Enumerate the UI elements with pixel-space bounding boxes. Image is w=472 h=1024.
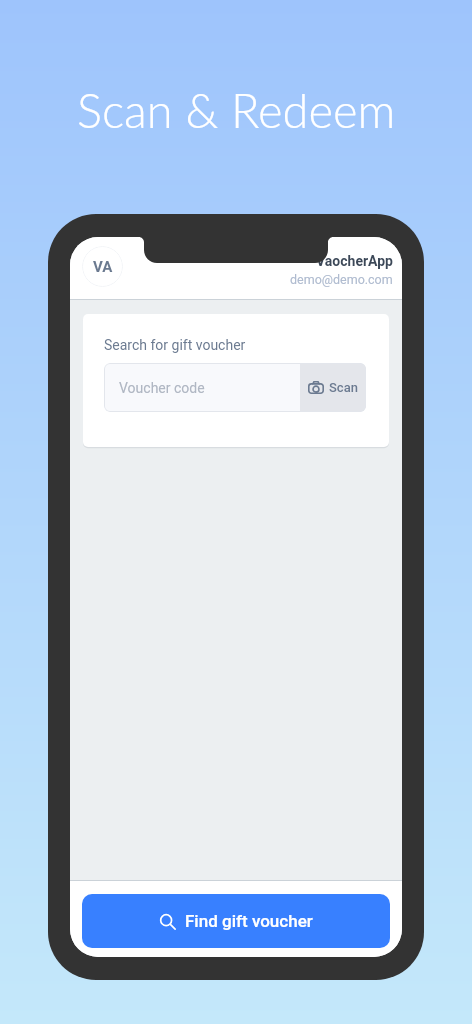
staticText: Search for gift voucher	[104, 337, 246, 353]
button[interactable]: Account	[82, 246, 123, 287]
staticText: VA	[93, 258, 113, 276]
button[interactable]: VaocherApp	[290, 253, 393, 287]
staticText: demo@demo.com	[290, 272, 393, 287]
button[interactable]: Scan	[300, 363, 366, 412]
staticText: Scan	[329, 380, 358, 395]
staticText: Find gift voucher	[185, 911, 313, 931]
staticText: VaocherApp	[316, 253, 393, 269]
staticText: Scan & Redeem	[77, 82, 396, 138]
button[interactable]: Voucher code	[104, 363, 300, 412]
button[interactable]: Find gift voucher	[82, 894, 390, 948]
staticText: Voucher code	[119, 380, 205, 396]
